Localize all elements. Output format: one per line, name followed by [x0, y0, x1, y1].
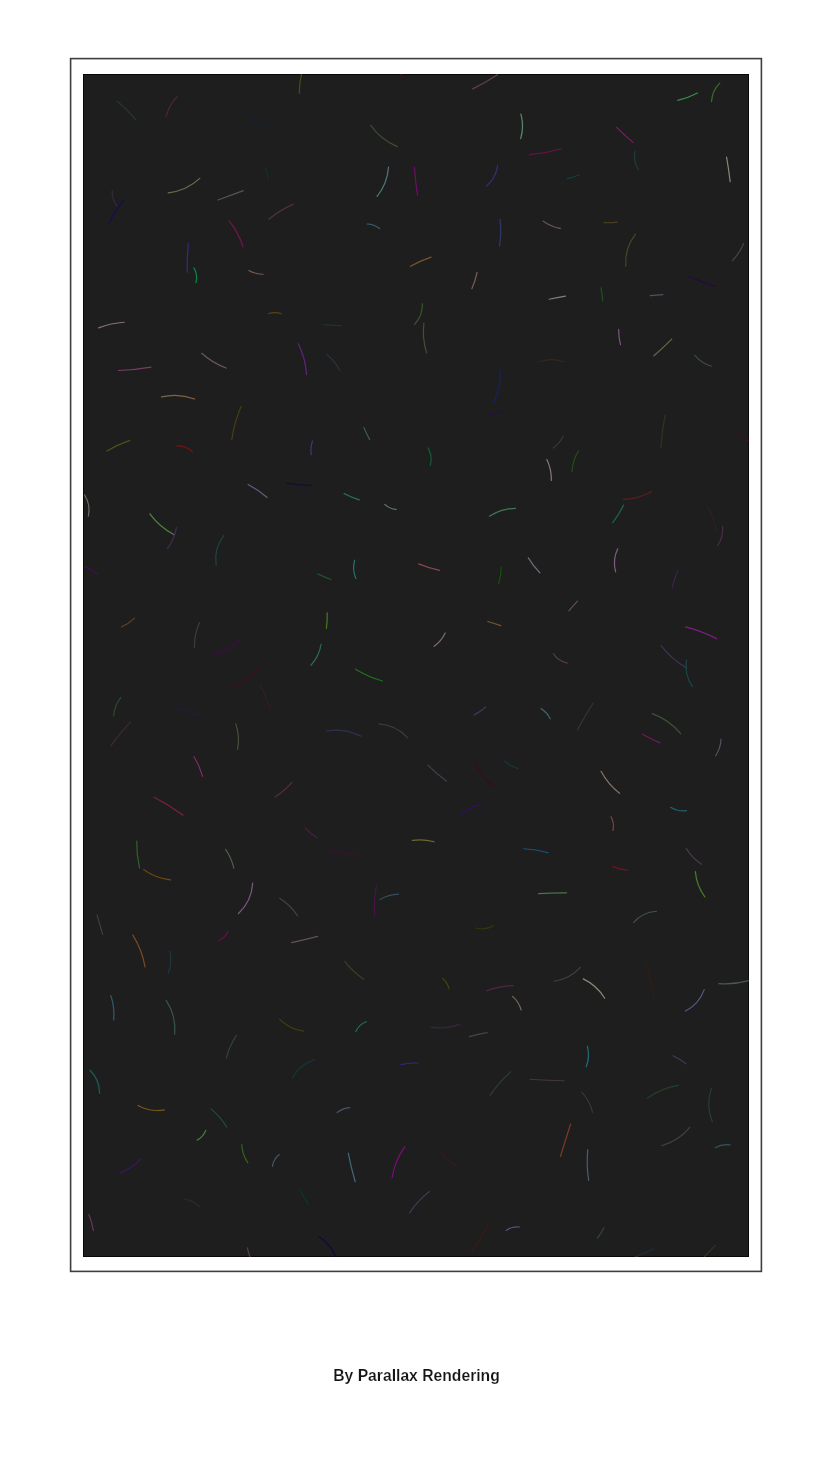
button[interactable]: Parallax streak artwork, framed canvas. … [70, 58, 762, 1272]
staticText: By Parallax Rendering [333, 1367, 500, 1385]
button[interactable]: By Parallax Rendering [333, 1367, 500, 1385]
